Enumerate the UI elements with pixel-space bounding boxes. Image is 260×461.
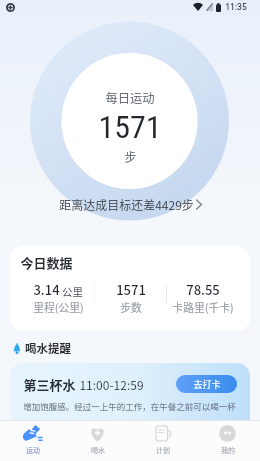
staticText: 运动 [26, 445, 40, 455]
staticText: 每日运动 [105, 89, 155, 107]
staticText: 步 [124, 148, 137, 165]
button[interactable]: 距离达成目标还差4429步 [59, 196, 202, 213]
staticText: 1571 [116, 280, 146, 299]
staticText: 今日数据 [20, 253, 73, 272]
button[interactable]: 计划 [130, 421, 195, 461]
staticText: 距离达成目标还差4429步 [59, 196, 194, 213]
staticText: 11:00-12:59 [79, 376, 144, 393]
button[interactable]: 去打卡 [176, 375, 237, 393]
staticText: 1571 [98, 108, 162, 146]
staticText: 计划 [156, 445, 170, 455]
staticText: 卡路里(千卡) [172, 299, 234, 315]
staticText: 喝水提醒 [25, 340, 71, 357]
staticText: 公里 [62, 284, 83, 299]
staticText: 第三杯水 [23, 375, 76, 394]
other: Assistant [6, 3, 15, 12]
staticText: 喝水 [91, 445, 105, 455]
button[interactable]: 我的 [195, 421, 260, 461]
button[interactable]: 喝水 [65, 421, 130, 461]
staticText: 78.55 [186, 280, 220, 299]
staticText: 11:35 [225, 2, 247, 12]
staticText: 3.14 [33, 280, 60, 299]
button[interactable]: 运动 [0, 421, 65, 461]
staticText: 去打卡 [193, 378, 221, 391]
staticText: 步数 [120, 299, 142, 315]
staticText: 里程(公里) [33, 299, 84, 315]
staticText: 我的 [221, 445, 235, 455]
staticText: 增加饱腹感。经过一上午的工作，在午餐之前可以喝一杯 [23, 400, 236, 412]
